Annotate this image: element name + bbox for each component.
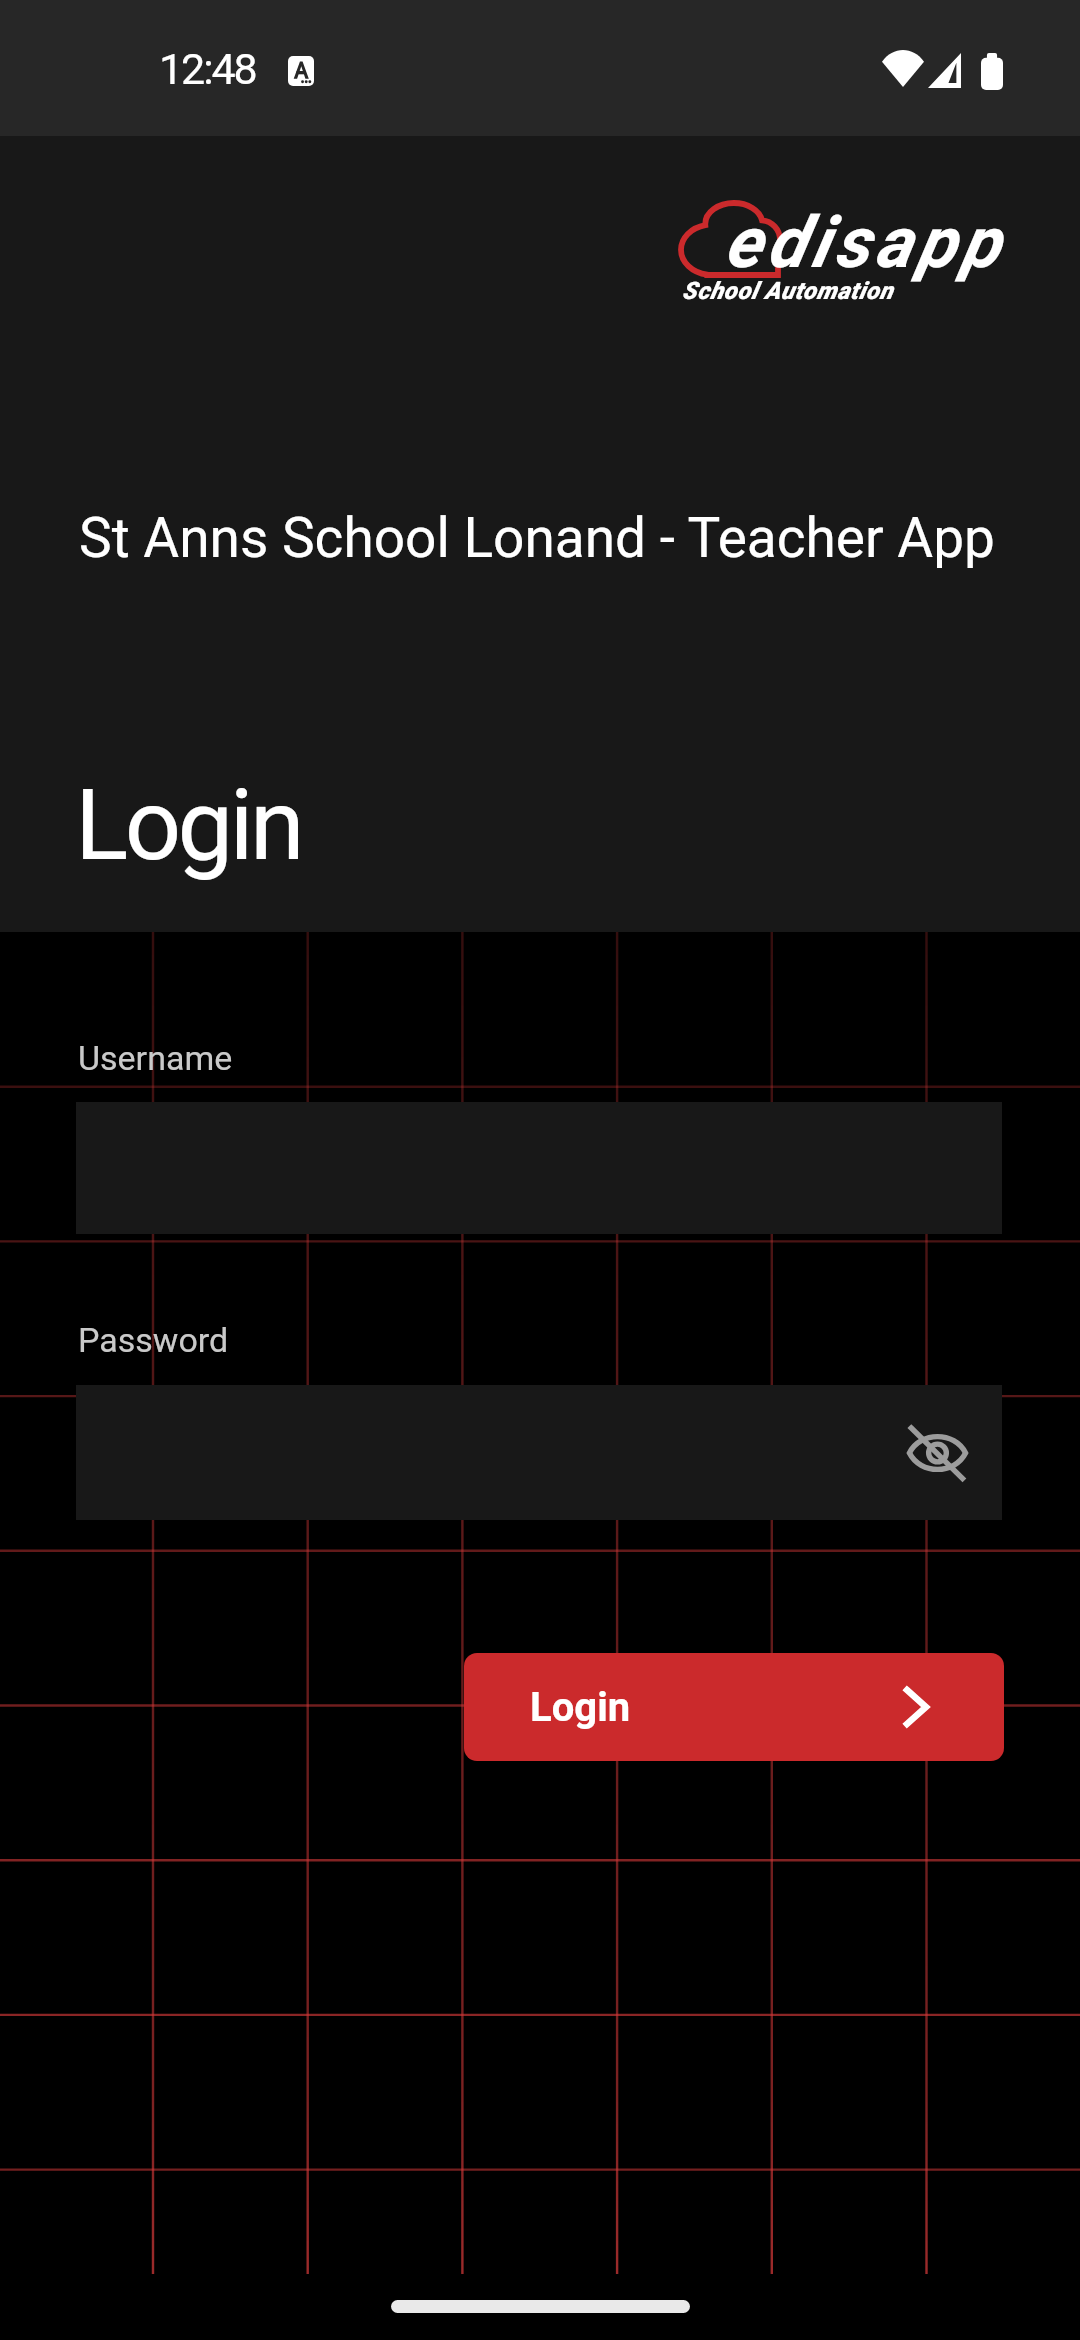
button[interactable]: Login: [464, 1653, 1004, 1761]
staticText: Login: [75, 767, 302, 883]
staticText: edisapp: [724, 201, 1005, 284]
staticText: Username: [78, 1038, 233, 1078]
button[interactable]: Password field: [76, 1385, 1002, 1520]
staticText: St Anns School Lonand - Teacher App: [79, 506, 995, 570]
staticText: Login: [530, 1684, 631, 1731]
button[interactable]: Show password: [901, 1417, 973, 1489]
staticText: School Automation: [682, 277, 894, 305]
other: Submit: [904, 1687, 929, 1727]
staticText: 12:48: [159, 44, 256, 94]
staticText: Password: [78, 1320, 229, 1360]
